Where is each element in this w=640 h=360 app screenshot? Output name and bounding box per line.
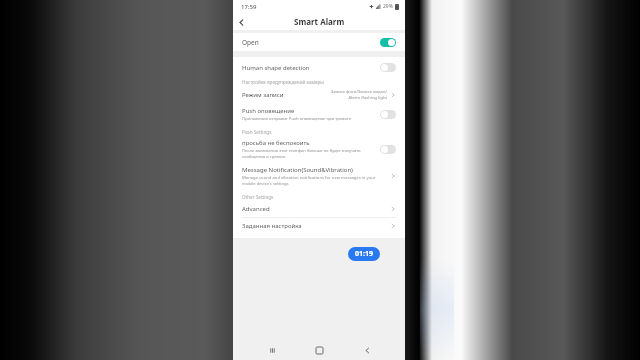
staticText: Advanced <box>242 205 270 213</box>
staticText: Other Settings <box>242 194 274 200</box>
staticText: Open <box>242 38 259 47</box>
button[interactable]: Toggle off <box>380 145 396 154</box>
button[interactable]: Toggle off <box>380 63 396 72</box>
button[interactable]: просьба не беспокоить <box>233 136 405 162</box>
button[interactable]: Push оповещение <box>233 104 405 125</box>
staticText: просьба не беспокоить <box>242 139 310 147</box>
staticText: Manage sound and vibration notifications… <box>242 175 376 186</box>
staticText: Push оповещение <box>242 107 295 115</box>
staticText: Human shape detection <box>242 64 310 72</box>
staticText: Alarm flashing light <box>348 95 387 101</box>
staticText: 01:19 <box>355 249 373 259</box>
button[interactable]: Режим записи <box>233 86 405 104</box>
button[interactable]: Advanced <box>233 201 405 217</box>
staticText: Заданная настройка <box>242 222 302 230</box>
staticText: Message Notification(Sound&Vibration) <box>242 166 353 174</box>
button[interactable]: Human shape detection <box>233 60 405 75</box>
button[interactable]: Home <box>310 341 328 359</box>
button[interactable]: Toggle on <box>380 38 396 47</box>
staticText: Smart Alarm <box>294 16 345 27</box>
staticText: Запись фото/Запись видео/ <box>331 89 387 95</box>
staticText: Настройка предупреждений камеры <box>242 79 324 85</box>
staticText: После включения этот телефон больше не б… <box>242 148 361 159</box>
button[interactable]: Open <box>233 33 405 51</box>
button[interactable]: 01:19 <box>348 247 380 261</box>
button[interactable]: Заданная настройка <box>233 218 405 234</box>
button[interactable]: Back <box>358 341 376 359</box>
button[interactable]: Recents <box>263 341 281 359</box>
button[interactable]: Message Notification(Sound&Vibration) <box>233 162 405 190</box>
button[interactable]: Toggle off <box>380 110 396 119</box>
staticText: 29% <box>383 3 393 10</box>
staticText: Push Settings <box>242 129 272 135</box>
button[interactable]: Back <box>233 14 249 30</box>
staticText: Режим записи <box>242 91 284 99</box>
staticText: 17:59 <box>241 3 257 11</box>
staticText: Приложение отправит Push оповещение при … <box>242 116 351 122</box>
